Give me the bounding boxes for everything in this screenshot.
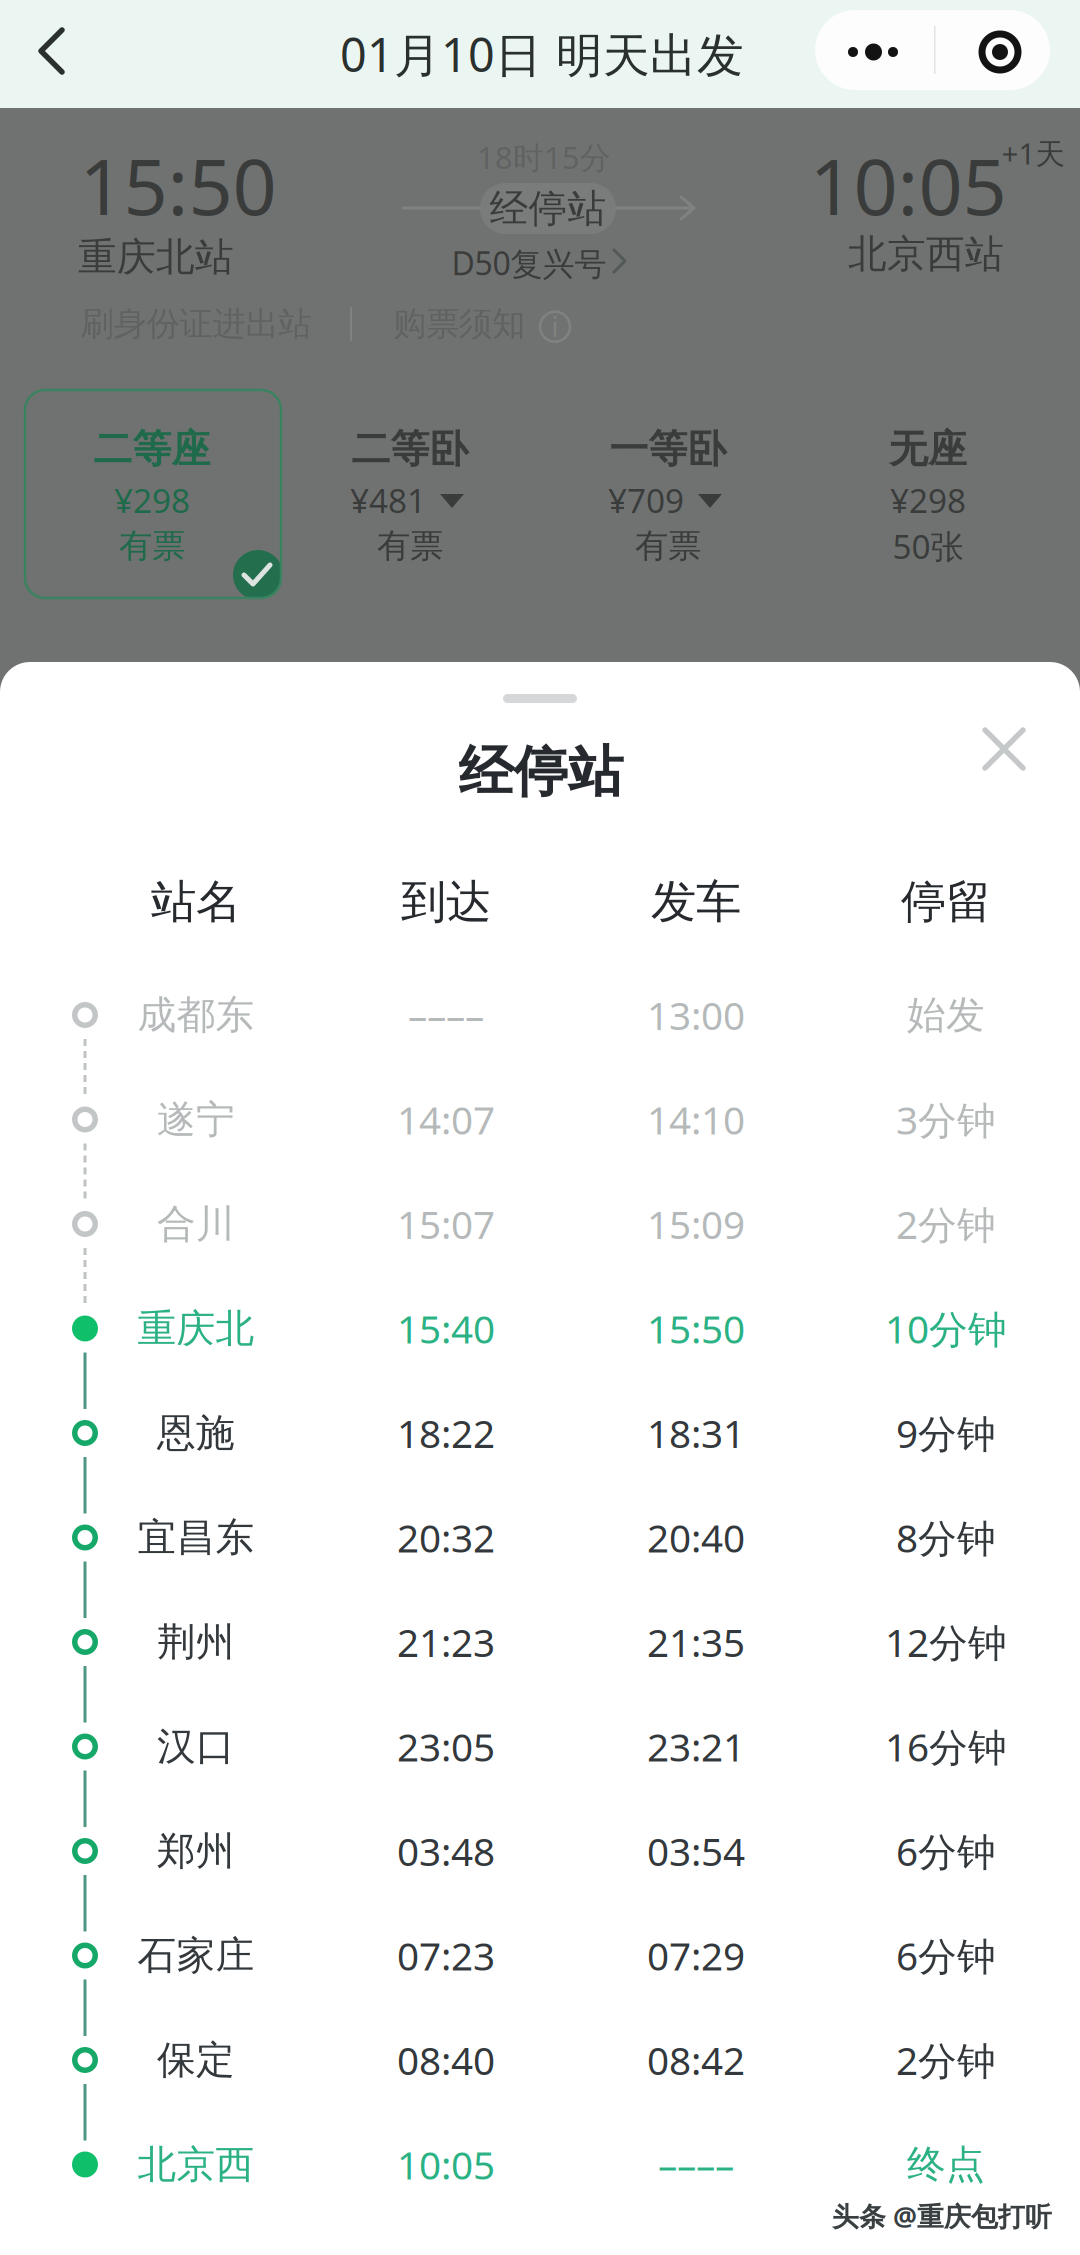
staticText: 经停站 bbox=[458, 738, 623, 805]
staticText: 23:05 bbox=[397, 1721, 495, 1772]
button[interactable]: Back bbox=[0, 0, 104, 108]
staticText: 18时15分 bbox=[477, 137, 611, 177]
staticText: 18:31 bbox=[647, 1407, 745, 1459]
staticText: 18:22 bbox=[397, 1407, 495, 1459]
staticText: 成都东 bbox=[137, 991, 254, 1039]
staticText: 12分钟 bbox=[885, 1616, 1007, 1668]
staticText: 一等卧 bbox=[609, 425, 726, 473]
staticText: 发车 bbox=[651, 874, 741, 930]
staticText: 13:00 bbox=[647, 989, 745, 1041]
staticText: 07:23 bbox=[397, 1930, 495, 1981]
staticText: 15:50 bbox=[79, 134, 276, 236]
button[interactable]: 经停站 bbox=[480, 183, 616, 234]
staticText: 15:50 bbox=[647, 1303, 745, 1354]
staticText: 保定 bbox=[157, 2036, 235, 2084]
staticText: 10:05 bbox=[809, 134, 1006, 236]
staticText: –––– bbox=[658, 2139, 734, 2190]
button[interactable]: 保定 bbox=[71, 2008, 1071, 2112]
staticText: 9分钟 bbox=[896, 1407, 996, 1459]
button[interactable]: 石家庄 bbox=[71, 1903, 1071, 2008]
staticText: 合川 bbox=[157, 1200, 235, 1248]
staticText: 站名 bbox=[151, 874, 241, 930]
button[interactable]: 合川 bbox=[71, 1172, 1071, 1276]
button[interactable]: Close mini program bbox=[936, 10, 1050, 90]
staticText: 有票 bbox=[377, 525, 443, 566]
staticText: i bbox=[551, 309, 558, 344]
staticText: 恩施 bbox=[157, 1409, 235, 1457]
button[interactable]: 成都东 bbox=[71, 963, 1071, 1067]
staticText: 二等座 bbox=[93, 425, 210, 473]
staticText: 二等卧 bbox=[351, 425, 468, 473]
button[interactable]: 二等座 bbox=[25, 388, 280, 597]
staticText: 到达 bbox=[401, 874, 491, 930]
staticText: 8分钟 bbox=[896, 1512, 996, 1563]
button[interactable]: More bbox=[815, 10, 933, 90]
staticText: 03:48 bbox=[397, 1825, 495, 1877]
staticText: 汉口 bbox=[157, 1723, 235, 1770]
staticText: 6分钟 bbox=[896, 1930, 996, 1981]
button[interactable]: 恩施 bbox=[71, 1381, 1071, 1485]
staticText: 14:10 bbox=[647, 1094, 745, 1145]
staticText: 21:35 bbox=[647, 1616, 745, 1668]
staticText: 头条 @重庆包打听 bbox=[832, 2198, 1052, 2234]
staticText: 荆州 bbox=[157, 1618, 235, 1666]
staticText: 15:09 bbox=[647, 1198, 745, 1250]
staticText: 宜昌东 bbox=[137, 1514, 254, 1561]
button[interactable]: 购票须知 bbox=[392, 278, 592, 370]
staticText: 郑州 bbox=[157, 1827, 235, 1875]
staticText: ¥481 bbox=[350, 478, 426, 522]
staticText: ¥709 bbox=[608, 478, 684, 522]
staticText: 21:23 bbox=[397, 1616, 495, 1668]
staticText: 08:40 bbox=[397, 2034, 495, 2086]
staticText: 北京西 bbox=[137, 2141, 254, 2188]
staticText: 10:05 bbox=[397, 2139, 495, 2190]
button[interactable]: 汉口 bbox=[71, 1694, 1071, 1799]
staticText: –––– bbox=[408, 989, 484, 1041]
staticText: +1天 bbox=[1001, 133, 1064, 172]
staticText: 有票 bbox=[635, 525, 701, 566]
staticText: 23:21 bbox=[647, 1721, 745, 1772]
staticText: 07:29 bbox=[647, 1930, 745, 1981]
staticText: 重庆北站 bbox=[78, 233, 234, 281]
staticText: D50复兴号 bbox=[451, 242, 606, 284]
button[interactable]: 重庆北 bbox=[71, 1276, 1071, 1381]
staticText: 停留 bbox=[901, 874, 991, 930]
staticText: 石家庄 bbox=[137, 1932, 254, 1979]
staticText: 08:42 bbox=[647, 2034, 745, 2086]
staticText: 15:40 bbox=[397, 1303, 495, 1354]
staticText: 重庆北 bbox=[137, 1305, 254, 1352]
button[interactable]: 宜昌东 bbox=[71, 1485, 1071, 1590]
staticText: ¥298 bbox=[890, 478, 966, 522]
staticText: 03:54 bbox=[647, 1825, 745, 1877]
staticText: 3分钟 bbox=[896, 1094, 996, 1145]
staticText: 2分钟 bbox=[896, 1198, 996, 1250]
staticText: 50张 bbox=[892, 524, 963, 568]
staticText: 2分钟 bbox=[896, 2034, 996, 2086]
button[interactable]: D50复兴号 bbox=[454, 217, 634, 309]
button[interactable]: 无座 bbox=[801, 388, 1056, 597]
button[interactable]: 遂宁 bbox=[71, 1067, 1071, 1172]
staticText: 遂宁 bbox=[157, 1096, 235, 1143]
staticText: 20:32 bbox=[397, 1512, 495, 1563]
staticText: 经停站 bbox=[489, 185, 606, 232]
button[interactable]: 一等卧 bbox=[541, 388, 796, 597]
staticText: 14:07 bbox=[397, 1094, 495, 1145]
staticText: 15:07 bbox=[397, 1198, 495, 1250]
staticText: 10分钟 bbox=[885, 1303, 1007, 1354]
staticText: 北京西站 bbox=[848, 230, 1004, 278]
button[interactable]: 刷身份证进出站 bbox=[71, 294, 321, 354]
staticText: 6分钟 bbox=[896, 1825, 996, 1877]
button[interactable]: 二等卧 bbox=[283, 388, 538, 597]
button[interactable]: 郑州 bbox=[71, 1799, 1071, 1903]
staticText: 始发 bbox=[907, 991, 985, 1039]
staticText: ¥298 bbox=[114, 478, 190, 522]
staticText: 16分钟 bbox=[885, 1721, 1007, 1772]
staticText: 无座 bbox=[889, 425, 967, 473]
button[interactable]: 北京西 bbox=[71, 2112, 1071, 2217]
button[interactable]: 荆州 bbox=[71, 1590, 1071, 1694]
button[interactable]: Close bbox=[955, 699, 1051, 795]
staticText: 购票须知 bbox=[393, 303, 525, 344]
staticText: 终点 bbox=[907, 2141, 985, 2188]
staticText: 01月10日 明天出发 bbox=[340, 23, 744, 85]
staticText: 20:40 bbox=[647, 1512, 745, 1563]
